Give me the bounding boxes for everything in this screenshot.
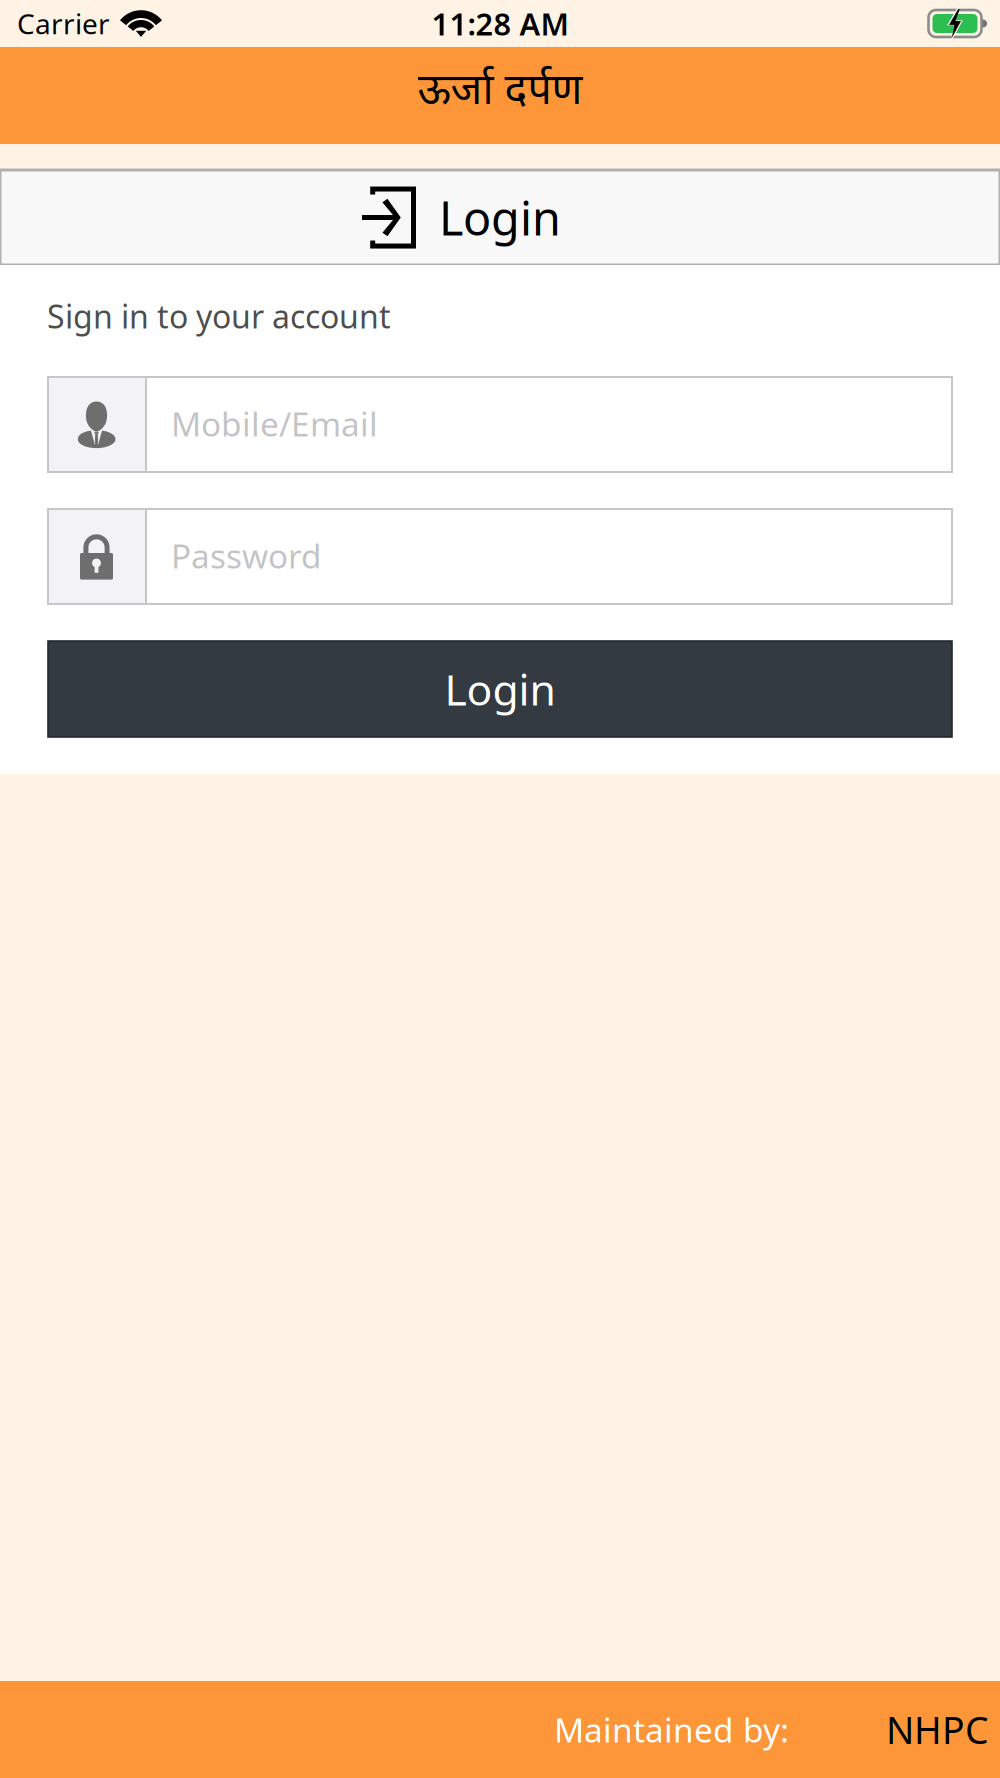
- staticText: Sign in to your account: [47, 295, 391, 337]
- button[interactable]: Login: [0, 170, 1000, 265]
- staticText: Maintained by:: [554, 1707, 789, 1752]
- staticText: ऊर्जा दर्पण: [417, 59, 582, 116]
- staticText: NHPC: [886, 1705, 989, 1754]
- staticText: Login: [444, 661, 555, 717]
- button[interactable]: Login: [48, 641, 952, 737]
- button[interactable]: Password: [48, 509, 952, 604]
- staticText: Mobile/Email: [171, 401, 378, 446]
- staticText: Password: [171, 533, 322, 578]
- staticText: 11:28 AM: [431, 3, 568, 44]
- staticText: Login: [439, 186, 561, 248]
- button[interactable]: Mobile or Email: [48, 377, 952, 472]
- staticText: Carrier: [17, 5, 110, 42]
